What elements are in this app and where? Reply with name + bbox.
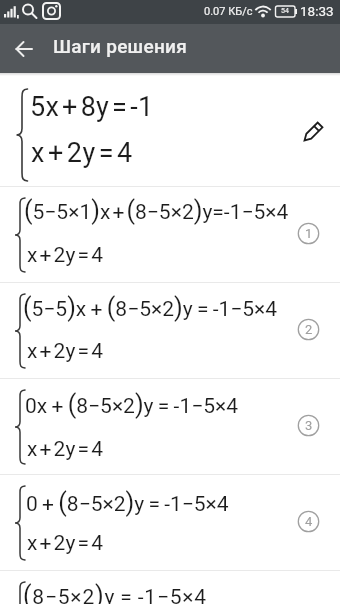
staticText: x + 2y = 4 [31,137,133,169]
staticText: x + 2y = 4 [27,339,103,364]
button[interactable]: 0 + (8−5×2)y = -1−5×4 [0,475,340,570]
staticText: 3 [305,418,313,433]
staticText: (5−5)x + (8−5×2)y = -1−5×4 [23,293,278,322]
button[interactable]: (5−5)x + (8−5×2)y = -1−5×4 [0,283,340,378]
staticText: 5x + 8y = -1 [30,91,154,123]
staticText: x + 2y = 4 [27,243,103,268]
staticText: 1 [305,226,313,241]
staticText: (5−5×1)x + (8−5×2)y=-1−5×4 [24,196,289,225]
staticText: 2 [305,322,313,337]
staticText: x + 2y = 4 [27,437,103,462]
button[interactable]: 0x + (8−5×2)y = -1−5×4 [0,379,340,474]
staticText: 0 + (8−5×2)y = -1−5×4 [26,488,229,517]
button[interactable]: (5−5×1)x + (8−5×2)y=-1−5×4 [0,187,340,282]
staticText: 0.07 КБ/с [204,5,253,18]
button[interactable] [8,33,41,66]
staticText: x + 2y = 4 [27,531,103,556]
button[interactable]: (8−5×2)y = -1−5×4 [0,571,340,604]
staticText: 0x + (8−5×2)y = -1−5×4 [25,390,239,419]
staticText: 4 [305,514,313,529]
staticText: 54 [281,7,289,15]
staticText: (8−5×2)y = -1−5×4 [23,581,207,604]
button[interactable] [297,116,329,148]
staticText: 18:33 [300,3,334,19]
staticText: Шаги решения [53,35,187,57]
